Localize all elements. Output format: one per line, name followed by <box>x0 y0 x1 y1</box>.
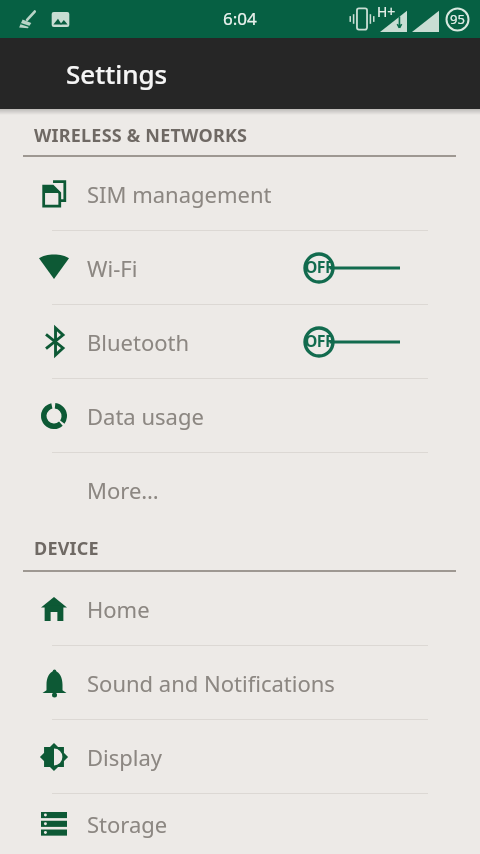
staticText: SIM management <box>87 179 272 209</box>
staticText: More… <box>87 475 159 505</box>
staticText: Home <box>87 594 150 624</box>
button[interactable]: Sound and Notifications <box>0 646 480 720</box>
button[interactable]: Storage <box>0 794 480 854</box>
button[interactable]: Toggle Bluetooth <box>303 322 400 362</box>
staticText: Wi-Fi <box>87 253 138 283</box>
staticText: Settings <box>66 56 168 91</box>
staticText: WIRELESS & NETWORKS <box>34 123 248 148</box>
staticText: Sound and Notifications <box>87 668 335 698</box>
button[interactable]: Bluetooth <box>0 305 480 379</box>
button[interactable]: More… <box>0 453 480 526</box>
button[interactable]: Toggle Wi-Fi <box>303 248 400 288</box>
button[interactable]: Home <box>0 572 480 646</box>
staticText: H+ <box>377 2 396 21</box>
button[interactable]: Wi-Fi <box>0 231 480 305</box>
staticText: Storage <box>87 809 168 839</box>
staticText: OFF <box>303 330 335 352</box>
button[interactable]: SIM management <box>0 157 480 231</box>
staticText: DEVICE <box>34 536 99 561</box>
staticText: Bluetooth <box>87 327 190 357</box>
button[interactable]: Data usage <box>0 379 480 453</box>
button[interactable]: Display <box>0 720 480 794</box>
staticText: 6:04 <box>223 7 257 30</box>
staticText: Data usage <box>87 401 204 431</box>
staticText: OFF <box>303 256 335 278</box>
staticText: Display <box>87 742 163 772</box>
staticText: 95 <box>450 10 465 28</box>
